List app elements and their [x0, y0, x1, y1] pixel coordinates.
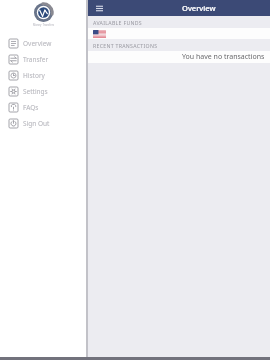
button[interactable]: History [0, 67, 86, 83]
button[interactable]: You have no transactions [88, 51, 270, 63]
staticText: Money Transfers [33, 23, 54, 27]
staticText: AVAILABLE FUNDS [93, 19, 143, 26]
button[interactable]: Settings [0, 83, 86, 99]
button[interactable]: Transfer [0, 51, 86, 67]
staticText: Sign Out [23, 119, 50, 128]
staticText: FAQs [23, 103, 39, 112]
button[interactable]: Sign Out [0, 115, 86, 131]
staticText: Overview [182, 3, 216, 13]
button[interactable]: FAQs [0, 99, 86, 115]
staticText: Overview [23, 39, 52, 48]
button[interactable]: Overview [0, 35, 86, 51]
staticText: RECENT TRANSACTIONS [93, 42, 158, 49]
staticText: Settings [23, 87, 48, 96]
staticText: You have no transactions [182, 52, 265, 62]
button[interactable]: Open navigation menu [92, 1, 106, 15]
staticText: Transfer [23, 55, 49, 64]
staticText: History [23, 71, 45, 80]
button[interactable] [88, 28, 270, 39]
